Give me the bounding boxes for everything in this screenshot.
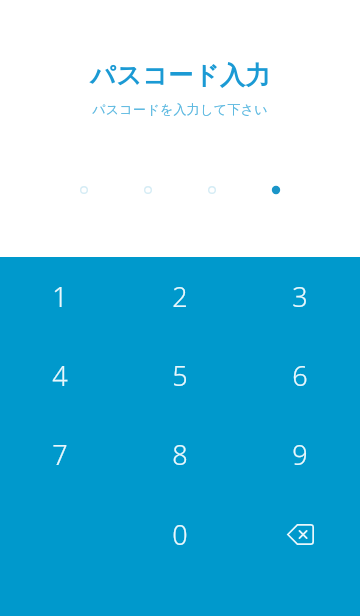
staticText: 4	[52, 357, 68, 394]
button[interactable]: 7	[0, 415, 120, 494]
staticText: パスコード入力	[90, 60, 271, 91]
staticText: 8	[172, 436, 188, 473]
button[interactable]: 2	[120, 257, 240, 336]
staticText: 5	[172, 357, 188, 394]
staticText: 1	[52, 278, 68, 315]
staticText: 9	[292, 436, 308, 473]
button[interactable]: 4	[0, 336, 120, 415]
staticText: 3	[292, 278, 308, 315]
button[interactable]: Backspace	[240, 494, 360, 574]
button[interactable]: 0	[120, 494, 240, 574]
staticText: 7	[52, 436, 68, 473]
button[interactable]: 9	[240, 415, 360, 494]
staticText: 6	[292, 357, 308, 394]
button[interactable]: 1	[0, 257, 120, 336]
button[interactable]: 3	[240, 257, 360, 336]
button[interactable]: 6	[240, 336, 360, 415]
button[interactable]: 8	[120, 415, 240, 494]
staticText: 2	[172, 278, 188, 315]
button[interactable]: 5	[120, 336, 240, 415]
staticText: パスコードを入力して下さい	[92, 101, 268, 117]
staticText: 0	[172, 516, 188, 553]
